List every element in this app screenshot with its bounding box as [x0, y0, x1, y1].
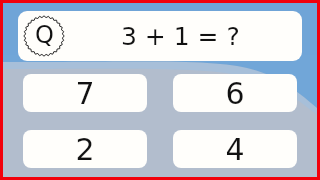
staticText: 4 — [225, 132, 245, 167]
button[interactable]: 2 — [23, 130, 147, 168]
staticText: 7 — [75, 76, 95, 111]
button[interactable]: 6 — [173, 74, 297, 112]
button[interactable]: 4 — [173, 130, 297, 168]
staticText: 6 — [225, 76, 245, 111]
staticText: 2 — [75, 132, 95, 167]
staticText: Q — [35, 21, 54, 49]
staticText: 3 + 1 = ? — [121, 22, 240, 51]
button[interactable]: 7 — [23, 74, 147, 112]
